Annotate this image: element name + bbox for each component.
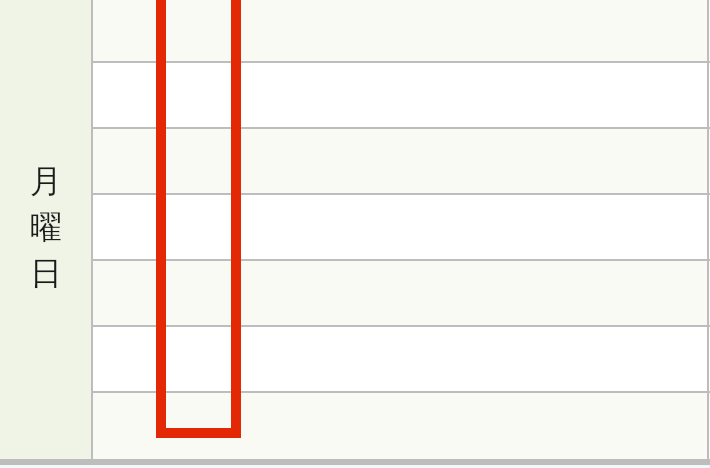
button[interactable] xyxy=(0,63,710,129)
button[interactable]: Selected column xyxy=(156,0,241,438)
button[interactable]: 月 xyxy=(0,0,91,459)
button[interactable] xyxy=(0,129,710,195)
staticText: 曜 xyxy=(30,207,62,253)
staticText: 月 xyxy=(30,161,62,207)
button[interactable] xyxy=(0,327,710,393)
button[interactable] xyxy=(0,0,710,63)
button[interactable] xyxy=(0,195,710,261)
button[interactable] xyxy=(0,261,710,327)
staticText: 日 xyxy=(30,253,62,299)
button[interactable] xyxy=(0,393,710,459)
